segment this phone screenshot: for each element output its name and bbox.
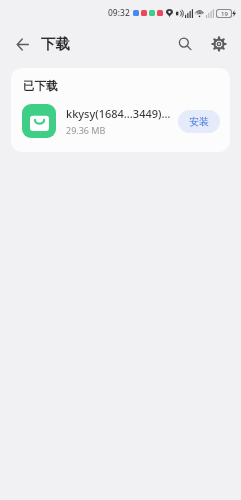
button[interactable]: kkysy(1684...3449).apk [11,102,230,152]
button[interactable]: 安装 [178,110,220,133]
staticText: 安装 [189,115,209,128]
staticText: 09:32 [108,7,130,19]
staticText: kkysy(1684...3449).apk [66,106,172,121]
staticText: 下载 [41,35,70,53]
button[interactable]: Settings [205,30,233,58]
staticText: 29.36 MB [66,124,106,136]
staticText: 19 [221,10,228,17]
button[interactable]: Search [171,30,199,58]
button[interactable]: Back [9,31,35,57]
staticText: 已下载 [23,79,58,93]
